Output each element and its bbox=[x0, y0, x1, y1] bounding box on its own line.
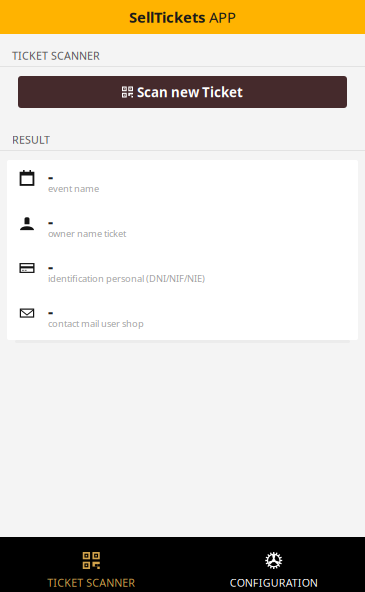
staticText: RESULT bbox=[12, 132, 50, 147]
button[interactable]: CONFIGURATION bbox=[182, 537, 365, 592]
staticText: TICKET SCANNER bbox=[12, 48, 100, 63]
staticText: - bbox=[48, 255, 53, 277]
button[interactable]: - bbox=[7, 250, 358, 295]
button[interactable]: - bbox=[7, 295, 358, 340]
staticText: - bbox=[48, 300, 53, 322]
staticText: Scan new Ticket bbox=[137, 83, 243, 101]
button[interactable]: TICKET SCANNER bbox=[0, 537, 182, 592]
staticText: owner name ticket bbox=[48, 227, 126, 240]
staticText: - bbox=[48, 210, 53, 232]
staticText: contact mail user shop bbox=[48, 317, 144, 330]
staticText: event name bbox=[48, 182, 99, 195]
button[interactable]: Scan new Ticket bbox=[18, 76, 347, 108]
button[interactable]: - bbox=[7, 205, 358, 250]
staticText: SellTickets bbox=[129, 7, 209, 27]
staticText: APP bbox=[209, 7, 236, 27]
staticText: - bbox=[48, 165, 53, 187]
staticText: identification personal (DNI/NIF/NIE) bbox=[48, 272, 205, 285]
staticText: CONFIGURATION bbox=[230, 575, 318, 590]
button[interactable]: - bbox=[7, 160, 358, 205]
staticText: TICKET SCANNER bbox=[47, 575, 135, 590]
